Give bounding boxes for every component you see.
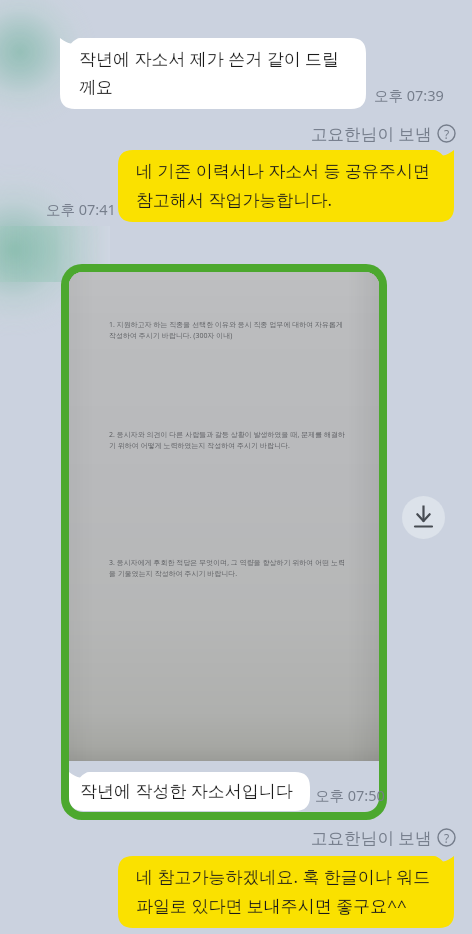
staticText: 오후 07:50 <box>315 785 385 805</box>
button[interactable]: Sent by info <box>311 826 456 849</box>
staticText: 고요한님이 보냄 <box>311 122 432 145</box>
staticText: ? <box>444 126 450 142</box>
staticText: 작년에 작성한 자소서입니다 <box>80 779 293 802</box>
staticText: 작년에 자소서 제가 쓴거 같이 드릴 께요 <box>79 47 340 98</box>
staticText: 오후 07:39 <box>374 85 444 105</box>
button[interactable]: Download <box>402 496 445 539</box>
staticText: 오후 07:41 <box>46 199 116 219</box>
button[interactable]: 작년에 자소서 제가 쓴거 같이 드릴 께요 <box>60 38 366 109</box>
button[interactable]: 네 기존 이력서나 자소서 등 공유주시면 참고해서 작업가능합니다. <box>118 150 454 222</box>
staticText: 2. 응시자와 의견이 다른 사람들과 갈등 상황이 발생하였을 때, 문제를 … <box>109 430 345 450</box>
staticText: 고요한님이 보냄 <box>311 826 432 849</box>
staticText: 3. 응시자에게 후회한 적당은 무엇이며, 그 역량을 향상하기 위하여 어떤… <box>109 558 345 578</box>
button[interactable]: Sent by info <box>311 122 456 145</box>
button[interactable]: 1. 지원하고자 하는 직종을 선택한 이유와 응시 직종 업무에 대하여 자유… <box>61 264 387 820</box>
staticText: 네 기존 이력서나 자소서 등 공유주시면 참고해서 작업가능합니다. <box>136 159 431 211</box>
staticText: ? <box>444 830 450 846</box>
staticText: 1. 지원하고자 하는 직종을 선택한 이유와 응시 직종 업무에 대하여 자유… <box>109 320 344 340</box>
button[interactable]: 네 참고가능하겠네요. 혹 한글이나 워드 파일로 있다면 보내주시면 좋구요^… <box>118 856 454 928</box>
staticText: 네 참고가능하겠네요. 혹 한글이나 워드 파일로 있다면 보내주시면 좋구요^… <box>136 865 431 917</box>
